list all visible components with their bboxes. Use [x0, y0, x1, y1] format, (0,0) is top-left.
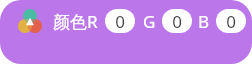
staticText: G: [143, 10, 156, 33]
button[interactable]: Color picker: [18, 9, 42, 33]
staticText: 0: [226, 10, 236, 33]
button[interactable]: 0: [216, 9, 246, 33]
button[interactable]: 0: [105, 9, 135, 33]
staticText: 颜色R: [53, 10, 98, 33]
staticText: 0: [115, 10, 125, 33]
staticText: 0: [172, 10, 182, 33]
staticText: B: [198, 10, 210, 33]
button[interactable]: 0: [162, 9, 192, 33]
